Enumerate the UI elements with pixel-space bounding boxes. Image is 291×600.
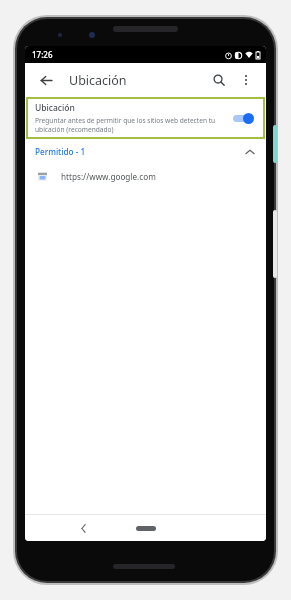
button[interactable]: Back <box>73 518 93 538</box>
button[interactable]: Permitido - 1 <box>25 139 266 164</box>
button[interactable]: Search <box>206 67 232 93</box>
staticText: Permitido - 1 <box>35 146 86 157</box>
staticText: 17:26 <box>32 49 53 60</box>
staticText: Ubicación <box>69 72 127 89</box>
staticText: https://www.google.com <box>61 171 156 182</box>
button[interactable]: Home <box>131 518 161 538</box>
button[interactable]: Back <box>33 67 59 93</box>
button[interactable]: More options <box>234 68 258 92</box>
button[interactable]: https://www.google.com <box>25 164 266 188</box>
button[interactable]: Location toggle <box>232 109 258 127</box>
staticText: Preguntar antes de permitir que los siti… <box>35 116 226 134</box>
staticText: Ubicación <box>35 102 75 114</box>
button[interactable]: Ubicación <box>26 97 265 139</box>
